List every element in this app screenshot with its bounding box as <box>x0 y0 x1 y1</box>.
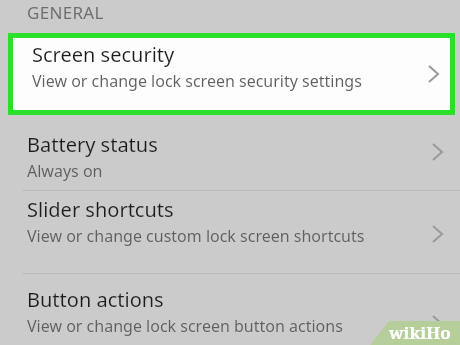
staticText: Button actions <box>27 286 164 313</box>
staticText: View or change lock screen security sett… <box>32 70 362 92</box>
staticText: View or change lock screen button action… <box>27 315 343 337</box>
button[interactable]: Button actions <box>0 286 460 337</box>
button[interactable]: Slider shortcuts <box>0 196 460 247</box>
button[interactable]: Screen security <box>8 33 455 115</box>
staticText: Battery status <box>27 131 158 158</box>
button[interactable]: Battery status <box>0 131 460 182</box>
staticText: GENERAL <box>27 1 104 24</box>
staticText: Always on <box>27 160 103 182</box>
staticText: Screen security <box>32 41 175 68</box>
button[interactable]: Open Screen security <box>425 63 442 85</box>
staticText: Slider shortcuts <box>27 196 174 223</box>
staticText: wikiHow <box>389 321 460 345</box>
staticText: View or change custom lock screen shortc… <box>27 225 365 247</box>
